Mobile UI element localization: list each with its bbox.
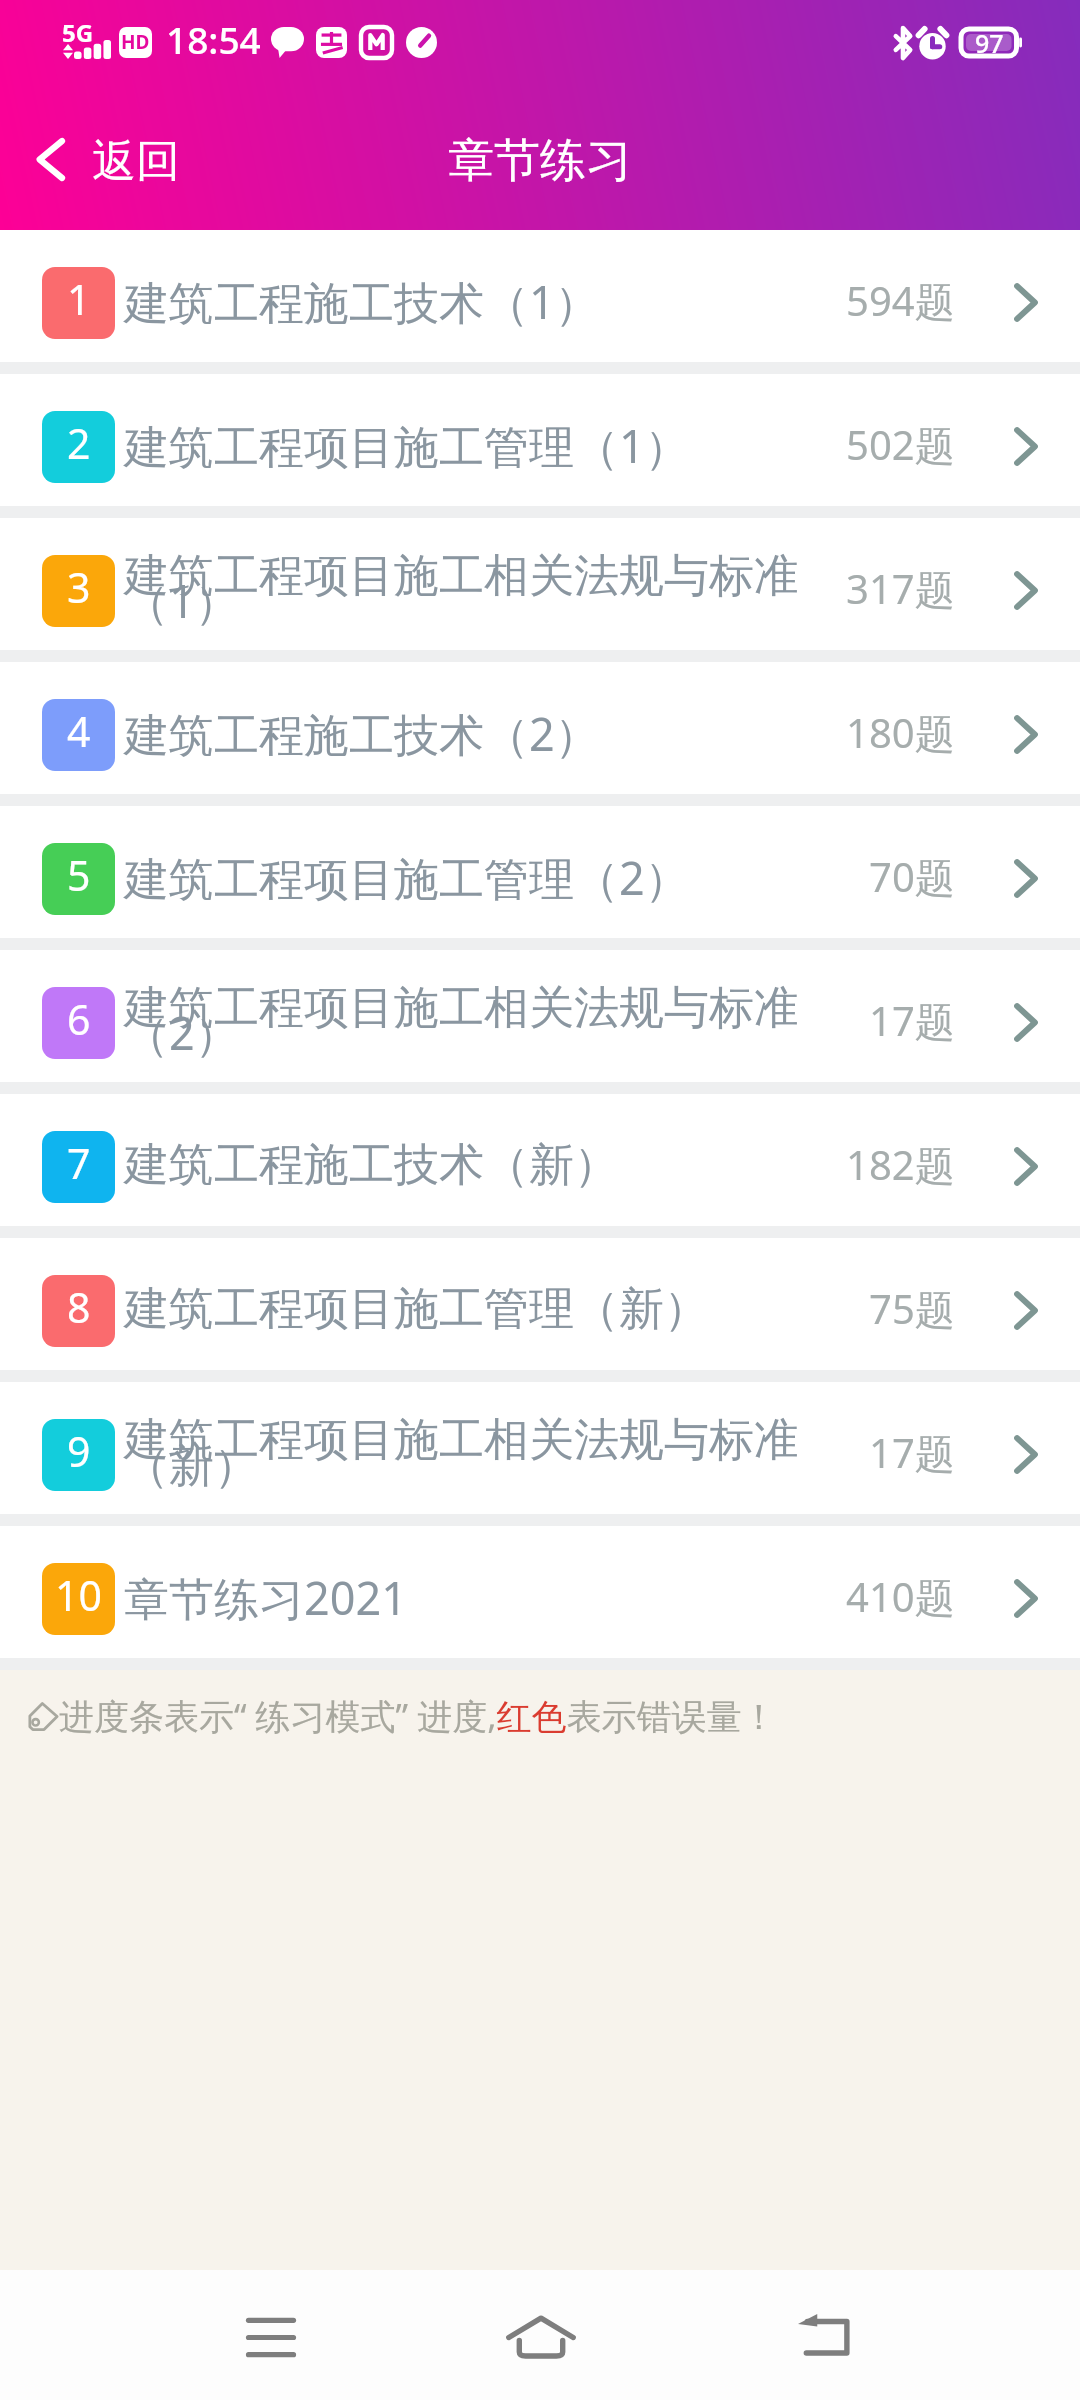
button[interactable]: 6 [0, 950, 1080, 1082]
staticText: 建筑工程项目施工相关法规与标准（新） [124, 1412, 814, 1494]
button[interactable]: 2 [0, 374, 1080, 506]
staticText: 180题 [846, 705, 955, 760]
staticText: 进度条表示“练习模式”进度,红色表示错误量！ [59, 1692, 777, 1740]
button[interactable]: 10 [0, 1526, 1080, 1658]
staticText: 3 [67, 559, 91, 615]
button[interactable]: Back [764, 2275, 884, 2395]
staticText: 70题 [869, 849, 955, 904]
staticText: 章节练习 [448, 132, 632, 190]
staticText: 594题 [846, 273, 955, 328]
staticText: 9 [67, 1423, 91, 1479]
staticText: 建筑工程施工技术（1） [124, 271, 600, 332]
button[interactable]: 4 [0, 662, 1080, 794]
staticText: 建筑工程施工技术（2） [124, 703, 600, 764]
staticText: 17题 [869, 993, 955, 1048]
staticText: 317题 [846, 561, 955, 616]
staticText: 5G [62, 16, 94, 49]
staticText: 6 [67, 991, 91, 1047]
button[interactable]: 7 [0, 1094, 1080, 1226]
staticText: 10 [55, 1567, 102, 1623]
button[interactable]: 返回 [0, 112, 208, 207]
staticText: 7 [67, 1135, 91, 1191]
staticText: 建筑工程施工技术（新） [124, 1137, 619, 1194]
button[interactable]: 8 [0, 1238, 1080, 1370]
staticText: 410题 [846, 1569, 955, 1624]
staticText: 1 [67, 271, 91, 327]
staticText: 返回 [92, 134, 180, 189]
staticText: 建筑工程项目施工管理（1） [124, 415, 690, 476]
staticText: 5 [67, 847, 91, 903]
button[interactable]: Recents [211, 2277, 331, 2397]
staticText: 75题 [869, 1281, 955, 1336]
staticText: 182题 [846, 1137, 955, 1192]
staticText: 97 [975, 26, 1004, 57]
staticText: 建筑工程项目施工相关法规与标准（1） [124, 548, 814, 631]
staticText: 建筑工程项目施工管理（2） [124, 847, 690, 908]
button[interactable]: 9 [0, 1382, 1080, 1514]
staticText: 建筑工程项目施工管理（新） [124, 1281, 709, 1338]
staticText: 4 [67, 703, 91, 759]
staticText: 18:54 [166, 14, 261, 64]
button[interactable]: 3 [0, 518, 1080, 650]
staticText: 502题 [846, 417, 955, 472]
staticText: HD [121, 29, 150, 55]
button[interactable]: 1 [0, 230, 1080, 362]
staticText: 2 [67, 415, 91, 471]
staticText: 章节练习2021 [124, 1567, 407, 1628]
button[interactable]: Home [481, 2277, 601, 2397]
staticText: 8 [67, 1279, 91, 1335]
button[interactable]: 5 [0, 806, 1080, 938]
staticText: 建筑工程项目施工相关法规与标准（2） [124, 980, 814, 1063]
staticText: 17题 [869, 1425, 955, 1480]
